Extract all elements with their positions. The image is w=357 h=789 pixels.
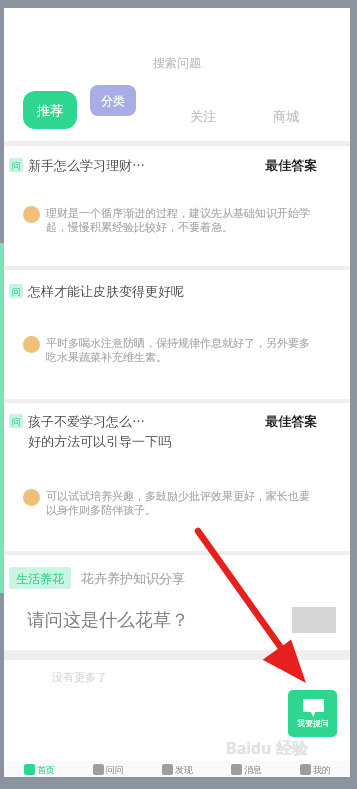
staticText: 发现 [175, 764, 193, 775]
staticText: 吃水果蔬菜补充维生素。 [46, 350, 167, 364]
staticText: 以身作则多陪伴孩子。 [46, 503, 156, 517]
staticText: 问 [12, 160, 21, 171]
staticText: 花卉养护知识分享 [81, 570, 185, 586]
staticText: 问问 [106, 764, 124, 775]
button[interactable]: 推荐 [23, 91, 77, 129]
staticText: 我要提问 [297, 718, 329, 728]
staticText: 搜索问题 [153, 55, 201, 70]
button[interactable]: 我的 [281, 761, 350, 777]
staticText: 请问这是什么花草？ [27, 609, 189, 632]
button[interactable]: 关注 [185, 103, 221, 129]
staticText: 推荐 [37, 102, 63, 118]
staticText: 怎样才能让皮肤变得更好呢 [28, 283, 184, 299]
staticText: 关注 [190, 108, 216, 124]
staticText: 商城 [273, 108, 299, 124]
button[interactable]: 首页 [4, 761, 74, 777]
button[interactable]: 分类 [90, 85, 136, 116]
staticText: Baidu 经验 [226, 737, 308, 759]
staticText: 问 [12, 286, 21, 297]
staticText: 最佳答案 [265, 413, 317, 429]
button[interactable]: 问 [4, 403, 350, 551]
button[interactable]: 商城 [268, 103, 304, 129]
button[interactable]: 问 [4, 270, 350, 399]
staticText: 可以试试培养兴趣，多鼓励少批评效果更好，家长也要 [46, 489, 310, 503]
staticText: 好的方法可以引导一下吗 [28, 433, 171, 449]
staticText: 新手怎么学习理财投资知识？ [28, 157, 146, 173]
staticText: 首页 [37, 764, 55, 775]
staticText: 最佳答案 [265, 157, 317, 173]
button[interactable]: 搜索问题 [153, 55, 201, 70]
staticText: 分类 [101, 93, 125, 108]
button[interactable]: 生活养花 [4, 555, 350, 650]
staticText: 平时多喝水注意防晒，保持规律作息就好了，另外要多 [46, 336, 310, 350]
staticText: 生活养花 [16, 571, 64, 586]
button[interactable]: 发现 [143, 761, 212, 777]
staticText: 问 [12, 416, 21, 427]
staticText: 孩子不爱学习怎么办？ [28, 413, 146, 429]
button[interactable]: 问 [4, 146, 350, 266]
button[interactable]: 消息 [212, 761, 281, 777]
staticText: 我的 [313, 764, 331, 775]
staticText: 消息 [244, 764, 262, 775]
staticText: 理财是一个循序渐进的过程，建议先从基础知识开始学 [46, 206, 310, 220]
button[interactable]: 问问 [74, 761, 143, 777]
button[interactable]: 我要提问 [288, 690, 337, 737]
staticText: 没有更多了 [52, 670, 107, 684]
staticText: 起，慢慢积累经验比较好，不要着急。 [46, 220, 233, 234]
